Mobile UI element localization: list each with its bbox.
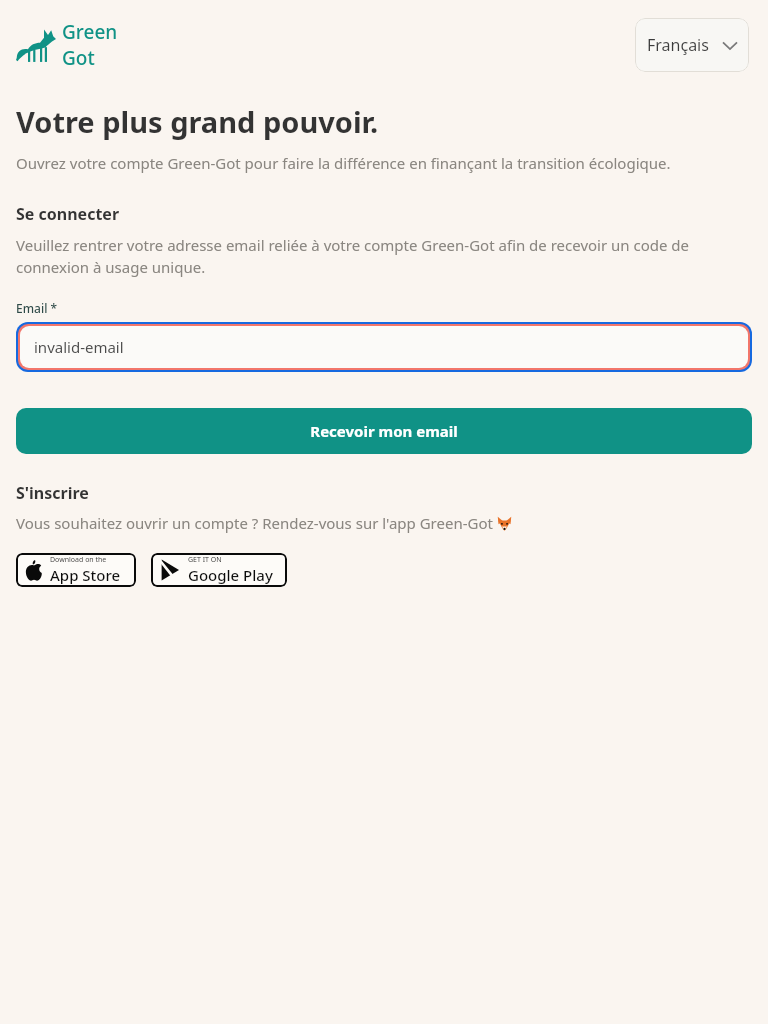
- staticText: Got: [62, 45, 95, 71]
- staticText: Se connecter: [16, 203, 120, 225]
- button[interactable]: Get it on Google Play: [151, 553, 287, 587]
- staticText: Download on the: [50, 555, 107, 565]
- staticText: Vous souhaitez ouvrir un compte ? Rendez…: [16, 513, 497, 533]
- staticText: Recevoir mon email: [310, 421, 458, 441]
- staticText: S'inscrire: [16, 482, 89, 504]
- button[interactable]: Green Got home: [16, 19, 118, 71]
- staticText: Français: [647, 34, 709, 56]
- staticText: App Store: [50, 565, 121, 585]
- button[interactable]: invalid-email: [20, 326, 748, 368]
- staticText: Votre plus grand pouvoir.: [16, 102, 379, 141]
- staticText: Email *: [16, 300, 58, 316]
- staticText: invalid-email: [34, 337, 124, 357]
- staticText: GET IT ON: [188, 555, 222, 565]
- staticText: Google Play: [188, 565, 273, 585]
- button[interactable]: Français: [635, 18, 749, 72]
- staticText: Ouvrez votre compte Green-Got pour faire…: [16, 153, 671, 173]
- staticText: Green: [62, 19, 118, 45]
- button[interactable]: Download on the App Store: [16, 553, 136, 587]
- button[interactable]: Recevoir mon email: [16, 408, 752, 454]
- staticText: Veuillez rentrer votre adresse email rel…: [16, 235, 752, 278]
